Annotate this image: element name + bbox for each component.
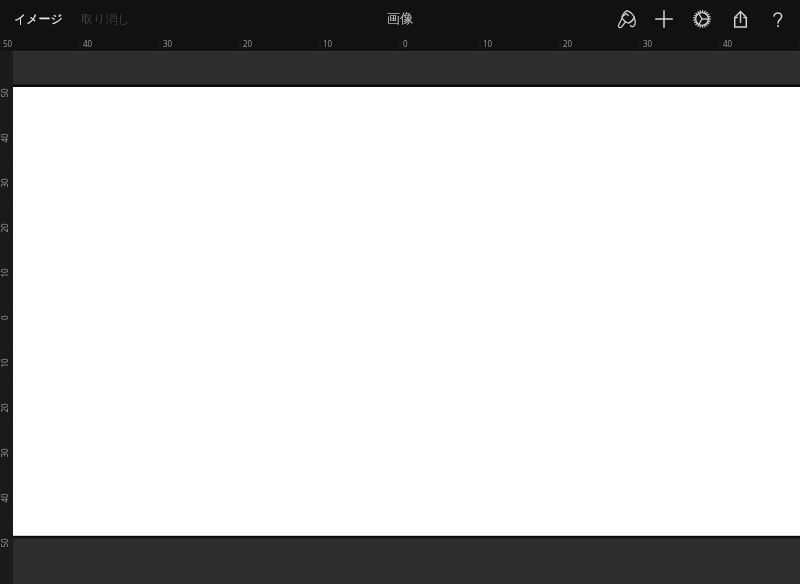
button[interactable]: Share: [721, 1, 759, 37]
button[interactable]: イメージ: [0, 0, 72, 36]
staticText: 40: [83, 38, 93, 49]
staticText: 画像: [387, 10, 413, 26]
button[interactable]: 取り消し: [72, 0, 142, 36]
staticText: イメージ: [14, 11, 63, 26]
staticText: 20: [243, 38, 253, 49]
staticText: 30: [0, 177, 9, 187]
staticText: 10: [0, 267, 9, 277]
staticText: 0: [0, 315, 10, 320]
button[interactable]: Paint roller: [607, 1, 645, 37]
staticText: 10: [0, 357, 9, 367]
staticText: 30: [643, 38, 653, 49]
button[interactable]: Help: [759, 1, 797, 37]
staticText: 50: [0, 87, 9, 97]
staticText: 20: [0, 402, 9, 412]
staticText: 30: [0, 447, 9, 457]
button[interactable]: Settings: [683, 1, 721, 37]
staticText: 10: [323, 38, 333, 49]
button[interactable]: Add: [645, 1, 683, 37]
staticText: 10: [483, 38, 493, 49]
staticText: 40: [723, 38, 733, 49]
staticText: 20: [563, 38, 573, 49]
staticText: 20: [0, 222, 9, 232]
staticText: 50: [3, 38, 13, 49]
staticText: 30: [163, 38, 173, 49]
staticText: 40: [0, 132, 9, 142]
staticText: 取り消し: [81, 11, 130, 26]
staticText: 50: [0, 537, 9, 547]
staticText: 0: [403, 38, 408, 49]
staticText: 40: [0, 492, 9, 502]
